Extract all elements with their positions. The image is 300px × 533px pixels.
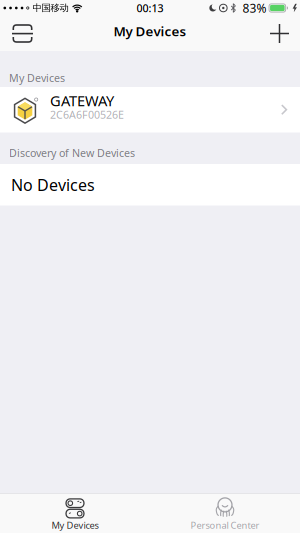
staticText: My Devices	[51, 519, 98, 531]
staticText: 中国移动	[32, 2, 68, 14]
button[interactable]: Personal Center	[150, 494, 300, 533]
staticText: No Devices	[11, 174, 95, 195]
staticText: 2C6A6F00526E	[50, 107, 124, 122]
button[interactable]: My Devices	[0, 494, 150, 533]
staticText: Personal Center	[190, 519, 259, 531]
button[interactable]: GATEWAY	[0, 87, 300, 132]
staticText: GATEWAY	[50, 91, 114, 110]
button[interactable]: Scan	[0, 16, 33, 51]
staticText: 00:13	[136, 1, 163, 15]
staticText: Discovery of New Devices	[9, 146, 135, 160]
button[interactable]: Add Device	[270, 16, 300, 51]
staticText: My Devices	[113, 22, 186, 40]
staticText: 83%	[242, 0, 266, 16]
staticText: My Devices	[9, 71, 65, 85]
